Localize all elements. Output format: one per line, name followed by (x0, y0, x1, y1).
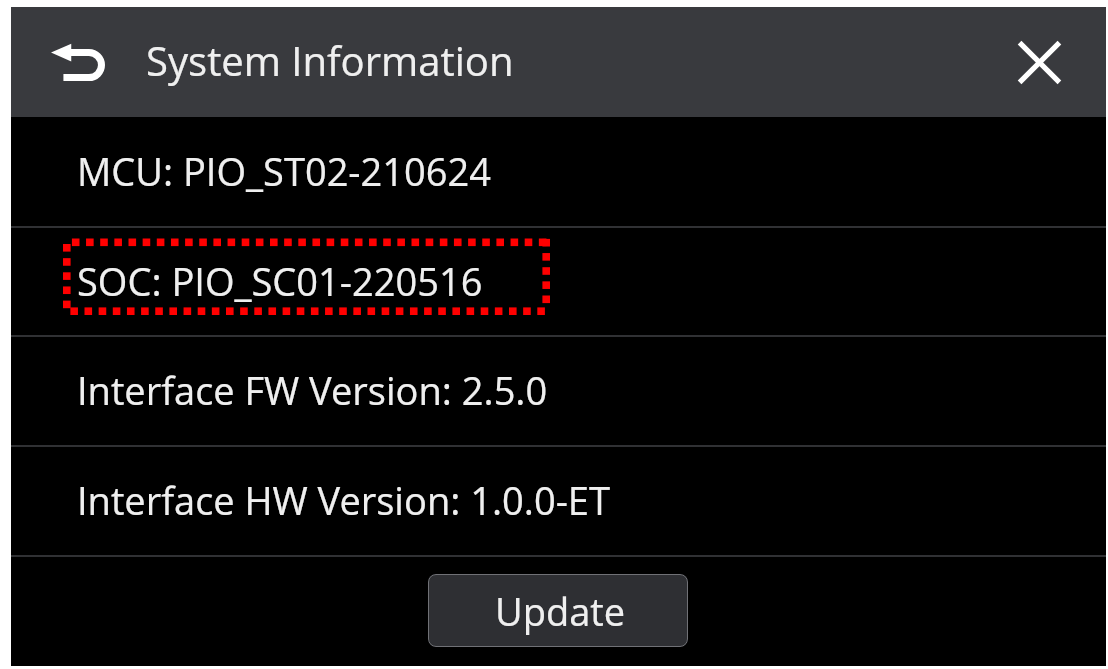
button[interactable]: Interface FW Version: 2.5.0 (11, 337, 1106, 445)
button[interactable]: SOC: PIO_SC01-220516 (11, 228, 1106, 335)
staticText: MCU: PIO_ST02-210624 (77, 145, 491, 197)
staticText: Update (495, 585, 626, 637)
staticText: Interface HW Version: 1.0.0-ET (77, 474, 611, 526)
button[interactable]: Update (428, 574, 688, 647)
staticText: SOC: PIO_SC01-220516 (77, 255, 483, 307)
button[interactable]: Close (1001, 24, 1077, 100)
staticText: Interface FW Version: 2.5.0 (77, 364, 548, 416)
button[interactable]: Back (41, 24, 115, 100)
button[interactable]: Interface HW Version: 1.0.0-ET (11, 447, 1106, 555)
staticText: System Information (146, 33, 514, 87)
button[interactable]: MCU: PIO_ST02-210624 (11, 117, 1106, 226)
